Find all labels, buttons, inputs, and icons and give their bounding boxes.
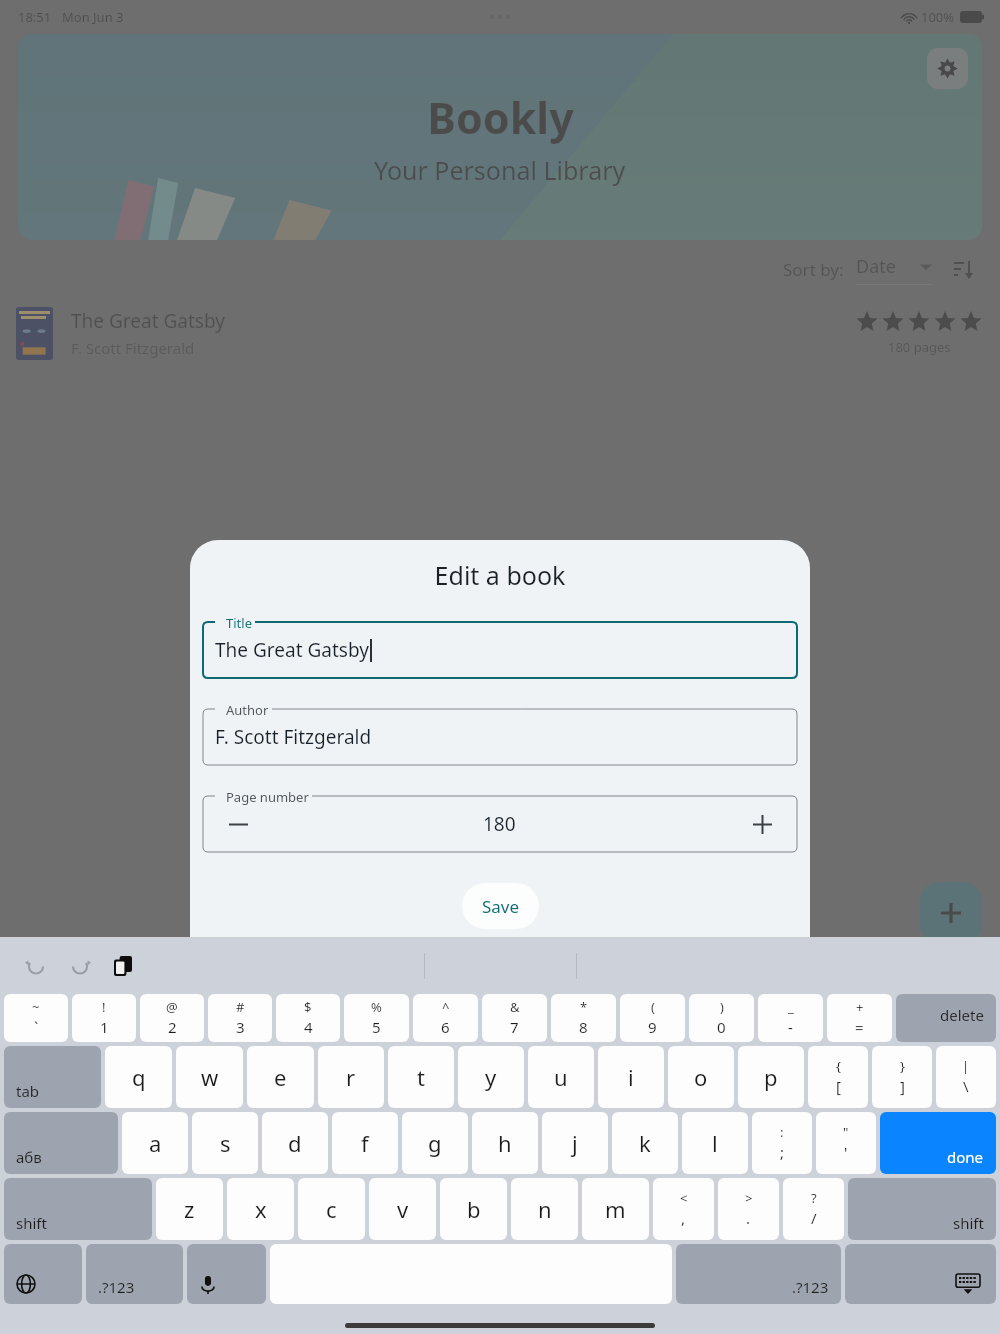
staticText: % (371, 998, 382, 1016)
staticText: ` (34, 1017, 39, 1037)
staticText: 9 (648, 1017, 657, 1037)
staticText: o (694, 1062, 708, 1092)
button[interactable]: $ (276, 994, 340, 1042)
staticText: F. Scott Fitzgerald (71, 338, 195, 358)
button[interactable]: Title (203, 622, 797, 678)
staticText: Save (482, 895, 520, 918)
button[interactable]: .?123 (86, 1244, 183, 1304)
staticText: g (428, 1128, 442, 1158)
other: Hide keyboard (956, 1274, 980, 1294)
button[interactable]: Author (203, 709, 797, 765)
button[interactable]: p (738, 1046, 804, 1108)
button[interactable]: Increase page number (745, 807, 779, 841)
button[interactable]: shift (4, 1178, 152, 1240)
staticText: n (538, 1194, 552, 1224)
staticText: delete (940, 1005, 984, 1025)
button[interactable]: < (653, 1178, 714, 1240)
button[interactable]: > (718, 1178, 779, 1240)
button[interactable]: j (542, 1112, 608, 1174)
staticText: h (498, 1128, 512, 1158)
button[interactable]: Save (462, 883, 539, 929)
button[interactable]: % (344, 994, 409, 1042)
button[interactable]: t (388, 1046, 454, 1108)
button[interactable]: s (192, 1112, 258, 1174)
button[interactable]: { (808, 1046, 868, 1108)
button[interactable]: абв (4, 1112, 118, 1174)
button[interactable]: ! (72, 994, 136, 1042)
staticText: v (397, 1194, 409, 1224)
staticText: ( (651, 998, 655, 1016)
button[interactable]: k (612, 1112, 678, 1174)
button[interactable]: c (298, 1178, 365, 1240)
button[interactable]: ^ (413, 994, 478, 1042)
button[interactable]: f (332, 1112, 398, 1174)
button[interactable]: shift (848, 1178, 996, 1240)
staticText: d (288, 1128, 302, 1158)
button[interactable]: Sort direction (950, 256, 978, 284)
button[interactable]: ~ (4, 994, 68, 1042)
button[interactable]: g (402, 1112, 468, 1174)
button[interactable]: Undo (20, 950, 52, 982)
button[interactable]: a (122, 1112, 188, 1174)
button[interactable]: i (598, 1046, 664, 1108)
button[interactable]: _ (758, 994, 823, 1042)
button[interactable]: e (247, 1046, 314, 1108)
button[interactable]: Date (856, 254, 932, 285)
button[interactable]: Settings (927, 48, 968, 89)
button[interactable]: & (482, 994, 547, 1042)
button[interactable]: o (668, 1046, 734, 1108)
button[interactable]: Voice input (187, 1244, 266, 1304)
button[interactable]: x (227, 1178, 294, 1240)
staticText: @ (166, 998, 178, 1016)
button[interactable]: m (582, 1178, 649, 1240)
button[interactable]: u (528, 1046, 594, 1108)
button[interactable]: ( (620, 994, 685, 1042)
button[interactable]: .?123 (676, 1244, 841, 1304)
button[interactable]: done (880, 1112, 996, 1174)
button[interactable]: Decrease page number (221, 807, 255, 841)
button[interactable]: Add book (920, 882, 982, 944)
button[interactable]: ) (689, 994, 754, 1042)
button[interactable]: + (827, 994, 892, 1042)
button[interactable]: : (752, 1112, 812, 1174)
staticText: } (900, 1057, 905, 1075)
button[interactable]: " (816, 1112, 876, 1174)
button[interactable]: * (551, 994, 616, 1042)
staticText: ; (780, 1142, 785, 1162)
staticText: r (346, 1062, 356, 1092)
button[interactable]: n (511, 1178, 578, 1240)
staticText: : (780, 1123, 784, 1141)
button[interactable]: h (472, 1112, 538, 1174)
button[interactable]: d (262, 1112, 328, 1174)
button[interactable]: | (936, 1046, 996, 1108)
button[interactable]: # (208, 994, 272, 1042)
staticText: f (361, 1128, 369, 1158)
button[interactable]: tab (4, 1046, 101, 1108)
button[interactable]: ? (783, 1178, 844, 1240)
button[interactable]: v (369, 1178, 436, 1240)
button[interactable]: @ (140, 994, 204, 1042)
staticText: " (843, 1123, 849, 1141)
staticText: l (712, 1128, 718, 1158)
staticText: p (764, 1062, 778, 1092)
button[interactable]: Switch language (4, 1244, 82, 1304)
button[interactable]: z (156, 1178, 223, 1240)
staticText: done (947, 1147, 984, 1167)
button[interactable]: b (440, 1178, 507, 1240)
button[interactable]: w (176, 1046, 243, 1108)
button[interactable]: q (105, 1046, 172, 1108)
button[interactable]: y (458, 1046, 524, 1108)
button[interactable]: r (318, 1046, 384, 1108)
staticText: 0 (717, 1017, 726, 1037)
button[interactable]: } (872, 1046, 932, 1108)
button[interactable]: Paste (108, 950, 140, 982)
button[interactable]: Redo (64, 950, 96, 982)
staticText: shift (16, 1213, 47, 1233)
staticText: k (639, 1128, 651, 1158)
button[interactable]: delete (896, 994, 996, 1042)
button[interactable]: Hide keyboard (845, 1244, 996, 1304)
button[interactable]: l (682, 1112, 748, 1174)
button[interactable]: The Great Gatsby (0, 297, 1000, 369)
staticText: Author (226, 701, 269, 719)
